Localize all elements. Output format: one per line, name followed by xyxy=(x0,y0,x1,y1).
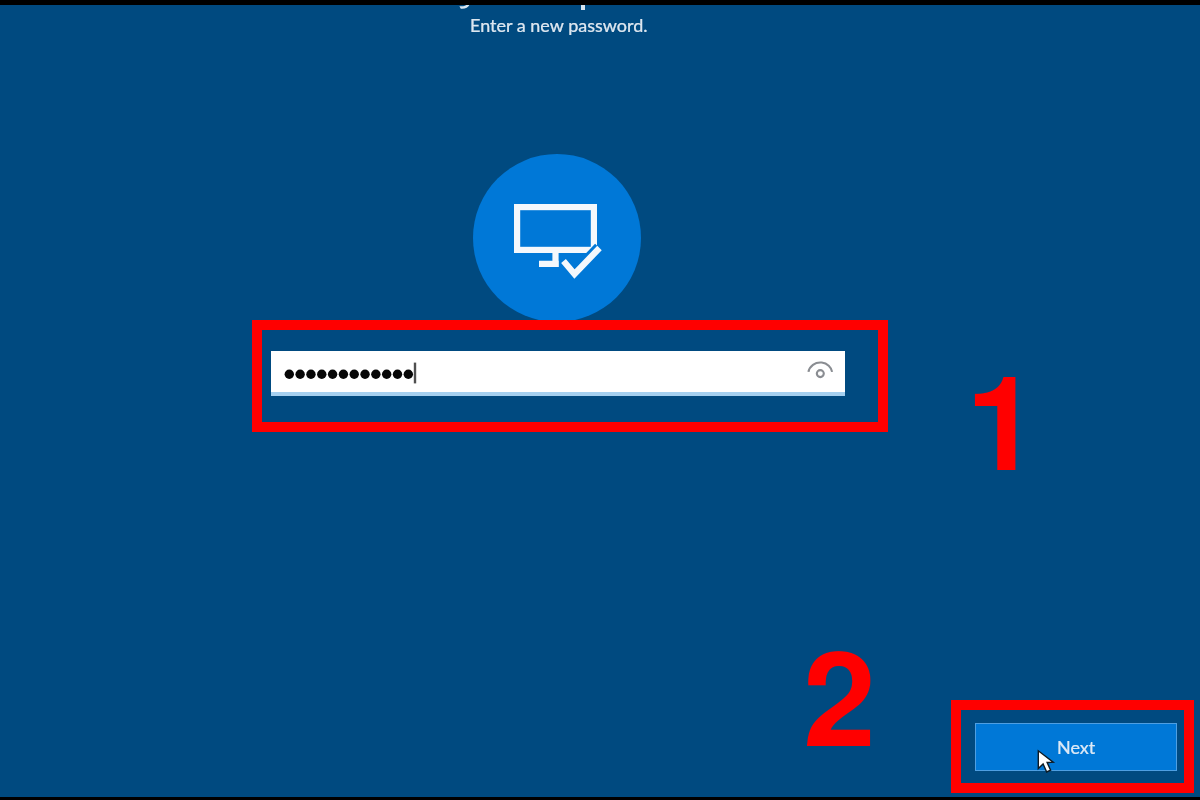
button[interactable]: Show password xyxy=(271,351,845,396)
staticText: 1 xyxy=(966,365,1039,496)
staticText: Enter a new password. xyxy=(470,14,648,36)
button[interactable]: Next xyxy=(975,723,1177,771)
button[interactable]: Show password xyxy=(804,357,836,389)
staticText: Next xyxy=(1057,736,1096,758)
staticText: 2 xyxy=(803,641,876,772)
